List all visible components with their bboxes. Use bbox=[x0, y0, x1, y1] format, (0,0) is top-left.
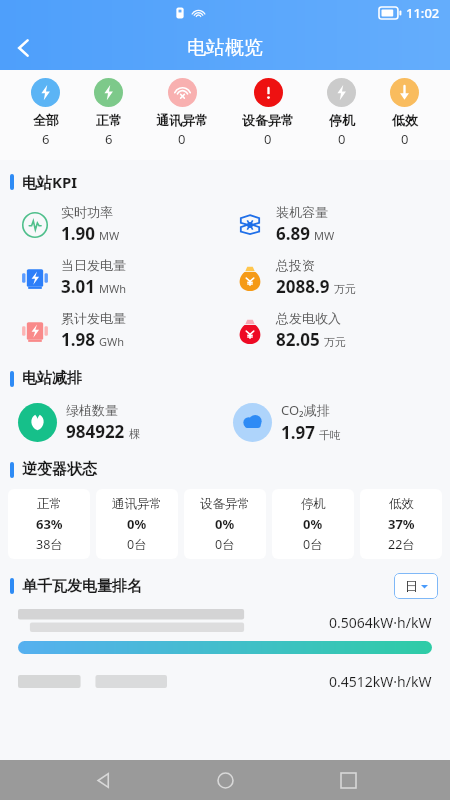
staticText: 实时功率 bbox=[61, 204, 113, 220]
button[interactable]: 总投资 bbox=[233, 251, 450, 304]
staticText: 22台 bbox=[388, 536, 415, 553]
button[interactable]: 返回 bbox=[0, 24, 48, 72]
staticText: 6.89 bbox=[276, 222, 310, 245]
button[interactable]: 低效 bbox=[360, 489, 442, 559]
staticText: 3.01 bbox=[61, 275, 95, 298]
staticText: MW bbox=[99, 228, 120, 243]
button[interactable]: 实时功率 bbox=[18, 198, 225, 251]
button[interactable]: 低效 bbox=[388, 78, 421, 148]
staticText: 0.5064kW·h/kW bbox=[329, 613, 432, 632]
staticText: 万元 bbox=[324, 335, 346, 349]
staticText: MW bbox=[314, 228, 335, 243]
staticText: 电站KPI bbox=[22, 172, 78, 192]
staticText: 0.4512kW·h/kW bbox=[329, 672, 432, 691]
staticText: 37% bbox=[388, 515, 415, 533]
staticText: 逆变器状态 bbox=[22, 460, 97, 479]
staticText: 1.90 bbox=[61, 222, 95, 245]
staticText: 6 bbox=[42, 130, 50, 148]
button[interactable]: 全部 bbox=[29, 78, 62, 148]
staticText: 棵 bbox=[129, 427, 140, 441]
staticText: 0 bbox=[401, 130, 409, 148]
staticText: 6 bbox=[105, 130, 113, 148]
staticText: 0台 bbox=[303, 536, 323, 553]
staticText: 0台 bbox=[127, 536, 147, 553]
staticText: 0% bbox=[215, 515, 235, 533]
staticText: 通讯异常 bbox=[112, 496, 162, 512]
staticText: MWh bbox=[99, 281, 127, 296]
staticText: 低效 bbox=[389, 496, 414, 512]
button[interactable]: 返回 bbox=[83, 760, 123, 800]
staticText: 日 bbox=[405, 578, 418, 594]
staticText: 82.05 bbox=[276, 328, 320, 351]
button[interactable]: 累计发电量 bbox=[18, 304, 225, 357]
staticText: 电站概览 bbox=[187, 36, 263, 60]
button[interactable]: 日 bbox=[394, 573, 438, 599]
staticText: 设备异常 bbox=[242, 112, 294, 128]
staticText: 设备异常 bbox=[200, 496, 250, 512]
staticText: 累计发电量 bbox=[61, 310, 126, 326]
staticText: 正常 bbox=[37, 496, 62, 512]
staticText: 千吨 bbox=[319, 428, 341, 442]
button[interactable]: 停机 bbox=[272, 489, 354, 559]
button[interactable]: 总发电收入 bbox=[233, 304, 450, 357]
button[interactable]: 设备异常 bbox=[184, 489, 266, 559]
staticText: 2088.9 bbox=[276, 275, 330, 298]
staticText: 0 bbox=[178, 130, 186, 148]
staticText: 低效 bbox=[392, 112, 418, 128]
button[interactable]: 通讯异常 bbox=[154, 78, 210, 148]
button[interactable]: 通讯异常 bbox=[96, 489, 178, 559]
button[interactable]: 最近任务 bbox=[328, 760, 368, 800]
staticText: 63% bbox=[36, 515, 63, 533]
button[interactable]: 主页 bbox=[205, 760, 245, 800]
staticText: CO₂减排 bbox=[281, 401, 330, 419]
staticText: 984922 bbox=[66, 420, 125, 443]
staticText: 停机 bbox=[301, 496, 326, 512]
staticText: 0% bbox=[303, 515, 323, 533]
staticText: 0 bbox=[264, 130, 272, 148]
staticText: 全部 bbox=[33, 112, 59, 128]
staticText: 0% bbox=[127, 515, 147, 533]
staticText: 1.97 bbox=[281, 421, 315, 444]
button[interactable]: 停机 bbox=[325, 78, 358, 148]
staticText: 单千瓦发电量排名 bbox=[22, 577, 142, 596]
staticText: 0台 bbox=[215, 536, 235, 553]
button[interactable]: 正常 bbox=[92, 78, 125, 148]
button[interactable]: 正常 bbox=[8, 489, 90, 559]
staticText: 正常 bbox=[96, 112, 122, 128]
staticText: 38台 bbox=[36, 536, 63, 553]
staticText: 电站减排 bbox=[22, 369, 82, 388]
staticText: 绿植数量 bbox=[66, 402, 118, 418]
staticText: 停机 bbox=[329, 112, 355, 128]
staticText: 0 bbox=[338, 130, 346, 148]
staticText: 装机容量 bbox=[276, 204, 328, 220]
staticText: 11:02 bbox=[406, 4, 440, 22]
button[interactable]: 当日发电量 bbox=[18, 251, 225, 304]
staticText: 通讯异常 bbox=[156, 112, 208, 128]
staticText: 1.98 bbox=[61, 328, 95, 351]
staticText: GWh bbox=[99, 334, 125, 349]
button[interactable]: CO₂减排 bbox=[233, 394, 450, 450]
staticText: 当日发电量 bbox=[61, 257, 126, 273]
staticText: 总投资 bbox=[276, 257, 315, 273]
staticText: 总发电收入 bbox=[276, 310, 341, 326]
button[interactable]: 装机容量 bbox=[233, 198, 450, 251]
staticText: 万元 bbox=[334, 282, 356, 296]
button[interactable]: 绿植数量 bbox=[18, 394, 225, 450]
button[interactable]: 设备异常 bbox=[240, 78, 296, 148]
